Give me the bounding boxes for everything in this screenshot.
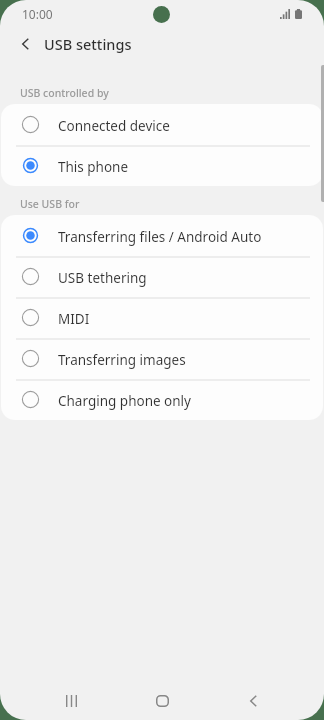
button[interactable]: Home (135, 674, 189, 720)
staticText: MIDI (58, 310, 90, 328)
button[interactable]: USB tethering (1, 256, 323, 297)
button[interactable]: Transferring files / Android Auto (1, 215, 323, 256)
staticText: USB settings (44, 34, 132, 54)
staticText: This phone (58, 158, 129, 176)
staticText: Transferring images (58, 351, 186, 369)
button[interactable]: MIDI (1, 297, 323, 338)
button[interactable]: This phone (1, 145, 323, 186)
staticText: 10:00 (22, 6, 53, 22)
staticText: USB controlled by (20, 86, 109, 100)
button[interactable]: Connected device (1, 104, 323, 145)
staticText: USB tethering (58, 269, 147, 287)
staticText: Use USB for (20, 197, 80, 211)
button[interactable]: Charging phone only (1, 379, 323, 420)
button[interactable]: Recent apps (44, 674, 98, 720)
button[interactable]: Transferring images (1, 338, 323, 379)
button[interactable]: Back (8, 27, 42, 61)
button[interactable]: Back (226, 674, 280, 720)
staticText: Transferring files / Android Auto (58, 228, 262, 246)
staticText: Connected device (58, 117, 170, 135)
staticText: Charging phone only (58, 392, 191, 410)
